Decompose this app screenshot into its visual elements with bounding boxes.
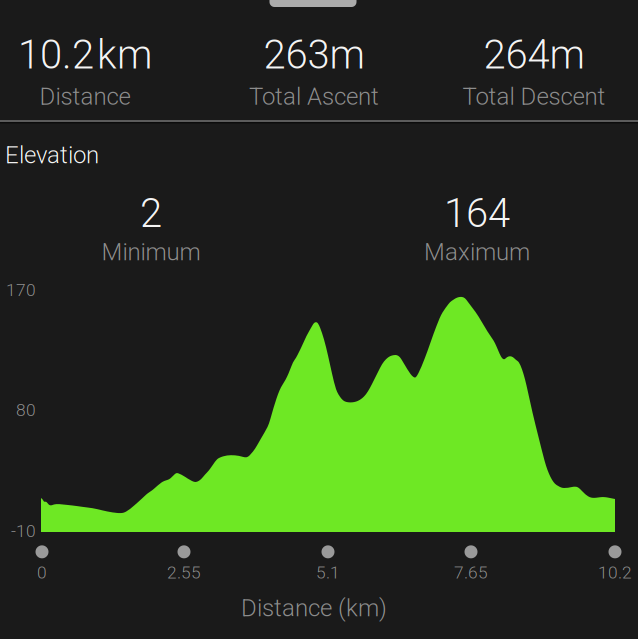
button[interactable]: 264m	[428, 21, 638, 121]
button[interactable]: 164	[327, 187, 627, 269]
staticText: 170	[6, 280, 36, 300]
staticText: 2.55	[167, 562, 201, 583]
staticText: 264m	[483, 31, 584, 78]
button[interactable]: Drag to resize	[269, 0, 356, 7]
staticText: Maximum	[424, 238, 530, 266]
staticText: Total Descent	[462, 82, 605, 110]
staticText: Distance (km)	[241, 594, 387, 622]
staticText: km	[97, 31, 152, 78]
staticText: 10.2	[18, 31, 94, 78]
staticText: 80	[16, 400, 36, 420]
staticText: Total Ascent	[249, 82, 379, 110]
staticText: 2	[140, 190, 162, 237]
button[interactable]: 2	[1, 187, 301, 269]
staticText: 263m	[263, 31, 364, 78]
staticText: -10	[11, 521, 36, 541]
staticText: 164	[444, 190, 510, 237]
staticText: 5.1	[316, 562, 340, 583]
staticText: 0	[37, 562, 47, 583]
staticText: Elevation	[5, 141, 99, 169]
button[interactable]: 263m	[208, 21, 420, 121]
staticText: Distance	[39, 82, 130, 110]
button[interactable]: Elevation profile chart	[41, 290, 615, 532]
staticText: 7.65	[454, 562, 488, 583]
button[interactable]: 10.2	[0, 21, 191, 121]
staticText: Minimum	[101, 238, 200, 266]
staticText: 10.2	[598, 562, 632, 583]
